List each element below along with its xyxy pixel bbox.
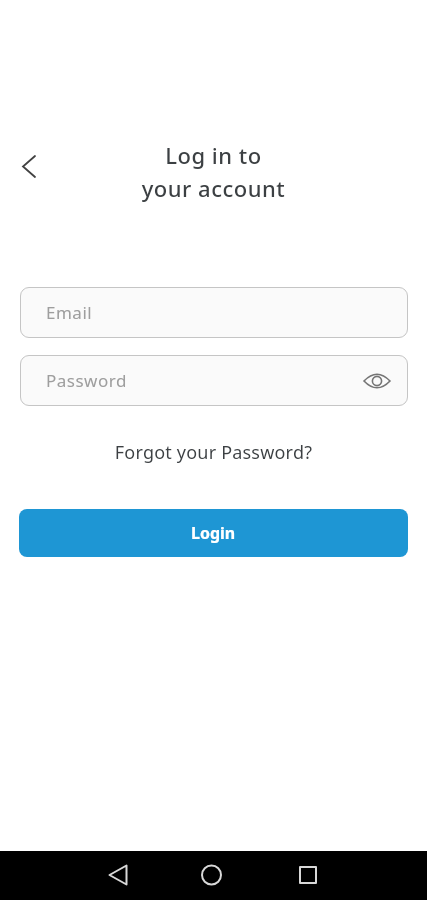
staticText: Forgot your Password? (0, 440, 427, 465)
staticText: Email (46, 301, 93, 324)
staticText: Login (191, 522, 236, 544)
staticText: Password (46, 369, 127, 392)
staticText: Log in to your account (0, 140, 427, 203)
